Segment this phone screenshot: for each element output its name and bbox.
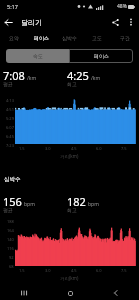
staticText: 요약: [9, 35, 19, 41]
staticText: bpm: [24, 201, 35, 208]
staticText: 페이스: [94, 53, 109, 59]
staticText: 고도: [92, 35, 102, 41]
button[interactable]: Back: [93, 286, 139, 300]
button[interactable]: 속도: [6, 49, 69, 63]
button[interactable]: 심박수: [55, 31, 83, 44]
staticText: 3.0: [45, 268, 51, 273]
staticText: 거리(km): [60, 275, 79, 281]
staticText: 7.5: [121, 268, 127, 273]
staticText: 116: [7, 246, 14, 251]
staticText: 68: [9, 264, 14, 269]
button[interactable]: 고도: [83, 31, 111, 44]
staticText: 6:45: [6, 134, 14, 139]
staticText: 심박수: [4, 176, 21, 183]
button[interactable]: Back: [0, 14, 16, 30]
staticText: 4.5: [71, 268, 77, 273]
staticText: /km: [27, 75, 37, 82]
staticText: bpm: [88, 201, 99, 208]
staticText: 4:13: [6, 98, 14, 103]
staticText: 1.5: [19, 268, 25, 273]
staticText: /km: [91, 75, 101, 82]
staticText: 페이스: [34, 35, 49, 41]
staticText: 심박수: [62, 35, 77, 41]
staticText: 최고: [67, 81, 77, 87]
staticText: 6.0: [96, 268, 102, 273]
staticText: 구간: [120, 35, 130, 41]
staticText: 7:08: [3, 68, 25, 83]
staticText: 평균: [3, 207, 13, 213]
staticText: 5:29: [6, 116, 14, 121]
button[interactable]: 페이스: [27, 31, 55, 44]
staticText: 156: [3, 194, 22, 209]
staticText: 거리(km): [60, 153, 79, 159]
staticText: 4.5: [71, 146, 77, 151]
staticText: 164: [7, 228, 14, 233]
button[interactable]: 요약: [0, 31, 27, 44]
button[interactable]: 페이스: [69, 49, 133, 63]
staticText: 1.5: [19, 146, 25, 151]
staticText: 5:17: [7, 3, 18, 10]
staticText: 182: [67, 194, 86, 209]
staticText: 48%: [117, 3, 127, 10]
button[interactable]: Recent apps: [0, 286, 47, 300]
staticText: 최고: [67, 207, 77, 213]
staticText: 4:25: [67, 68, 89, 83]
staticText: 6.0: [96, 146, 102, 151]
staticText: 속도: [33, 53, 43, 59]
staticText: 92: [9, 255, 14, 260]
button[interactable]: More options: [123, 14, 139, 30]
staticText: 평균: [3, 81, 13, 87]
staticText: 7:23: [6, 143, 14, 148]
staticText: 6:07: [6, 125, 14, 130]
staticText: 7.5: [121, 146, 127, 151]
staticText: 3.0: [45, 146, 51, 151]
staticText: 4:51: [6, 107, 14, 112]
button[interactable]: Share: [107, 14, 123, 30]
staticText: 140: [7, 237, 14, 242]
button[interactable]: 구간: [111, 31, 139, 44]
staticText: 달리기: [21, 18, 42, 27]
staticText: 188: [7, 219, 14, 224]
button[interactable]: Home: [47, 286, 93, 300]
